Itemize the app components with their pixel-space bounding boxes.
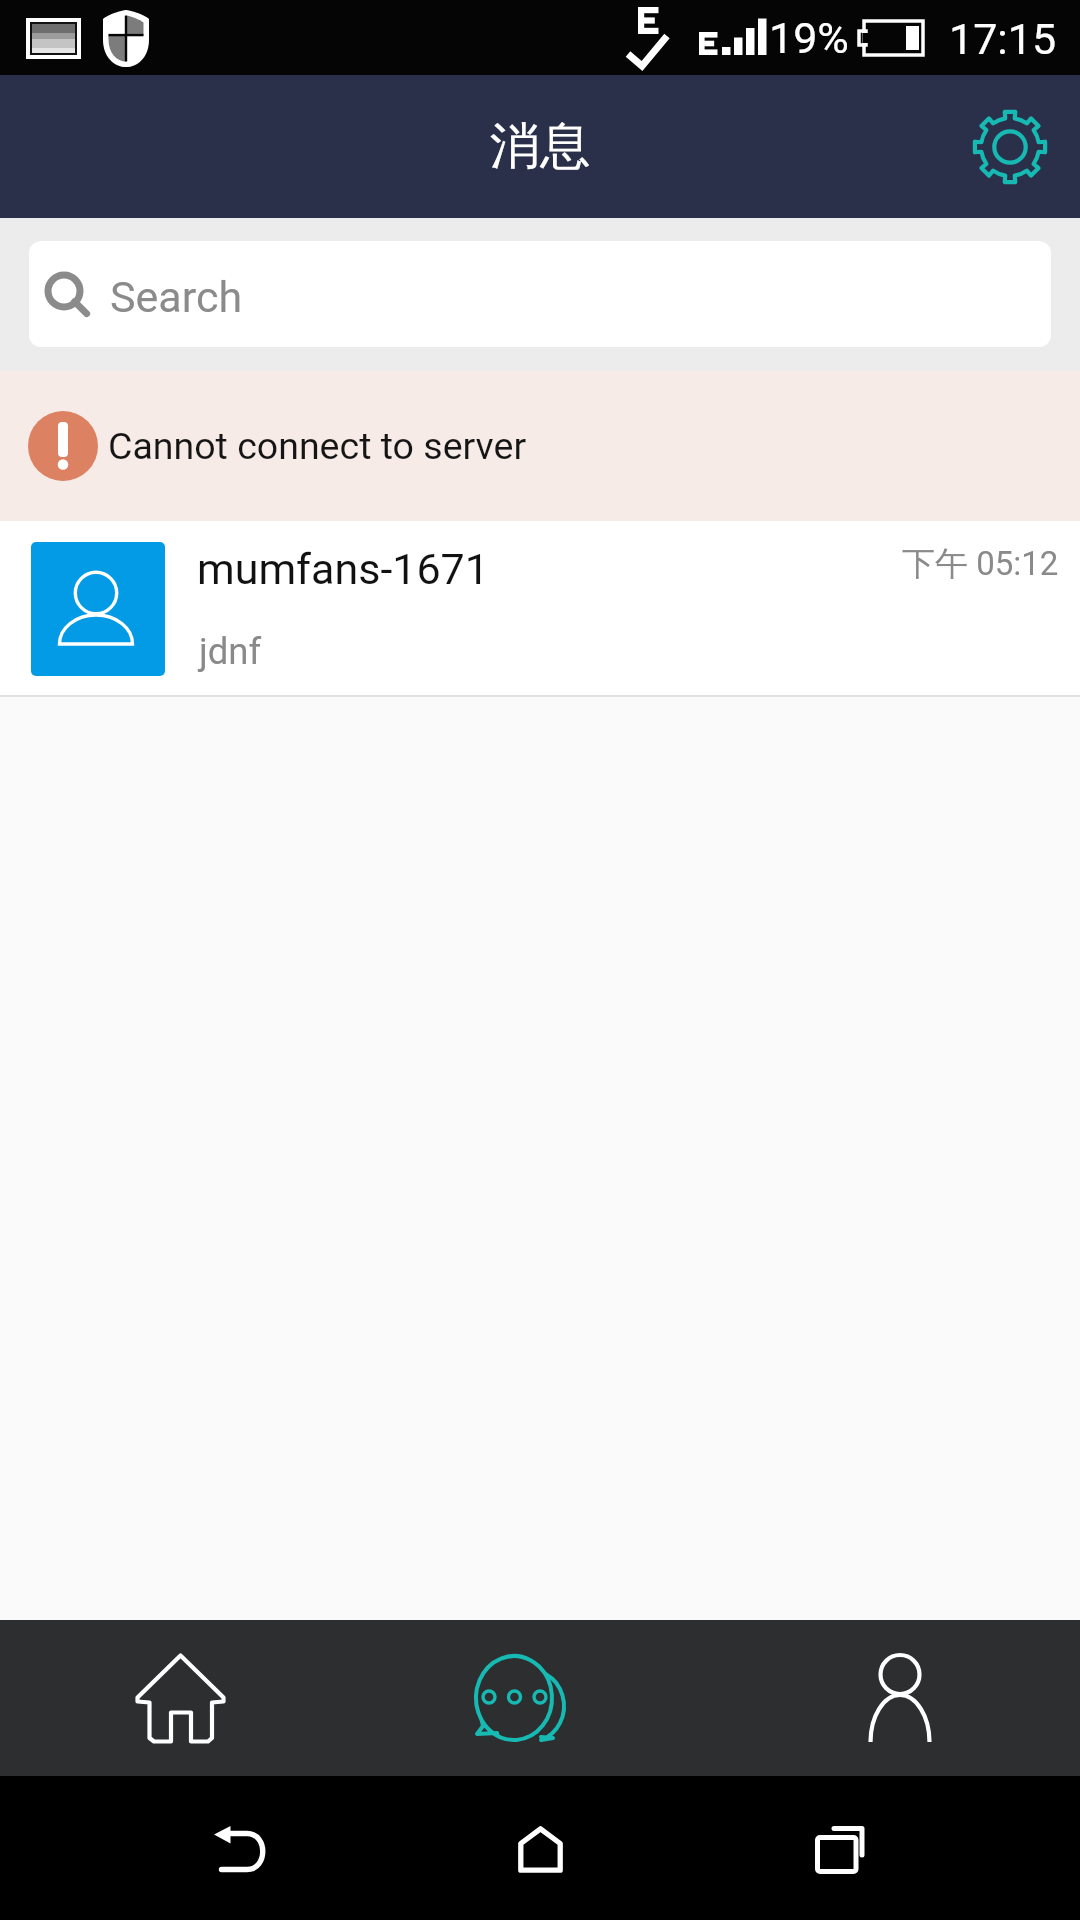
staticText: jdnf	[199, 630, 262, 673]
button[interactable]: mumfans-1671	[0, 521, 1080, 697]
button[interactable]: Back	[175, 1776, 305, 1920]
button[interactable]: Recents	[775, 1776, 905, 1920]
button[interactable]: Messages	[360, 1620, 720, 1776]
button[interactable]: Search	[29, 241, 1051, 347]
staticText: mumfans-1671	[197, 544, 489, 594]
staticText: 19%	[769, 13, 849, 63]
staticText: 消息	[490, 115, 590, 178]
button[interactable]: Settings	[960, 97, 1060, 197]
button[interactable]: Home	[0, 1620, 360, 1776]
button[interactable]: Profile	[720, 1620, 1080, 1776]
staticText: Search	[110, 272, 243, 322]
staticText: Cannot connect to server	[108, 424, 527, 468]
staticText: 17:15	[949, 14, 1057, 64]
button[interactable]: Home	[475, 1776, 605, 1920]
staticText: 下午 05:12	[902, 543, 1059, 585]
